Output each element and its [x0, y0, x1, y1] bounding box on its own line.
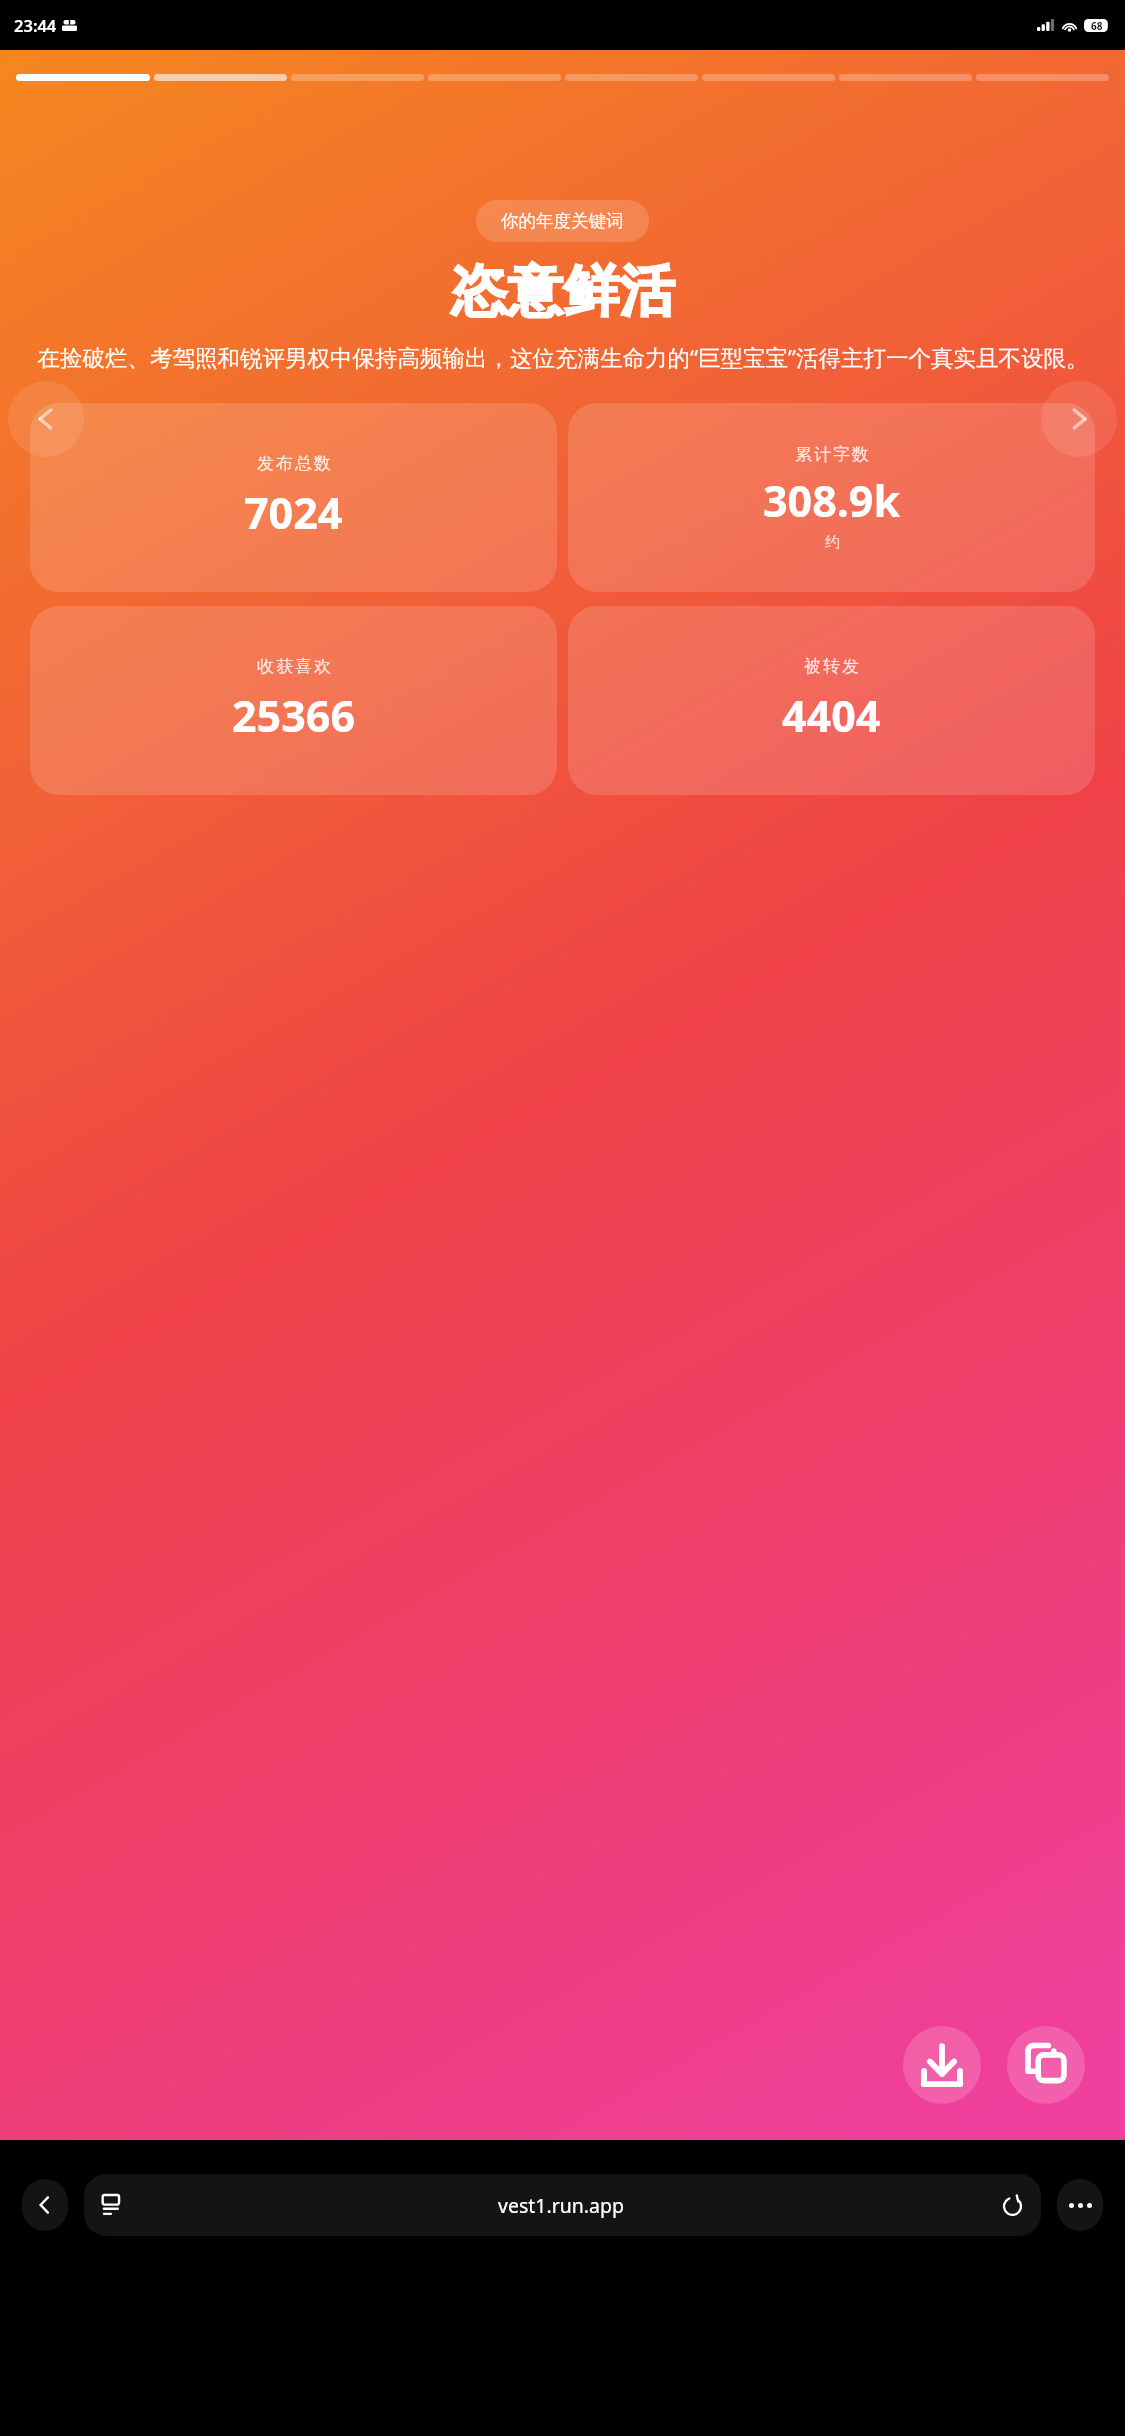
staticText: 收获喜欢: [256, 656, 332, 677]
staticText: 25366: [232, 686, 355, 745]
button[interactable]: Back: [22, 2179, 68, 2231]
staticText: 你的年度关键词: [501, 210, 624, 232]
staticText: 恣意鲜活: [451, 257, 675, 326]
staticText: 23:44: [14, 14, 57, 36]
staticText: 累计字数: [794, 444, 870, 465]
button[interactable]: Next: [1041, 381, 1117, 457]
staticText: 发布总数: [256, 453, 332, 474]
button[interactable]: Copy: [1007, 2026, 1085, 2104]
button[interactable]: 收获喜欢: [30, 606, 557, 795]
button[interactable]: vest1.run.app: [84, 2174, 1041, 2236]
staticText: 68: [1091, 19, 1103, 32]
staticText: 7024: [244, 483, 343, 542]
staticText: 被转发: [803, 656, 860, 677]
button[interactable]: 累计字数: [568, 403, 1095, 592]
staticText: 4404: [782, 686, 881, 745]
staticText: vest1.run.app: [498, 2192, 624, 2219]
button[interactable]: 被转发: [568, 606, 1095, 795]
button[interactable]: 你的年度关键词: [476, 200, 649, 242]
other: Reload: [1001, 2194, 1024, 2217]
staticText: 308.9k: [763, 471, 901, 530]
button[interactable]: Save image: [903, 2026, 981, 2104]
button[interactable]: Previous: [8, 381, 84, 457]
button[interactable]: 发布总数: [30, 403, 557, 592]
button[interactable]: More: [1057, 2179, 1103, 2231]
staticText: 在捡破烂、考驾照和锐评男权中保持高频输出，这位充满生命力的“巨型宝宝”活得主打一…: [37, 342, 1089, 373]
staticText: 约: [825, 533, 840, 552]
